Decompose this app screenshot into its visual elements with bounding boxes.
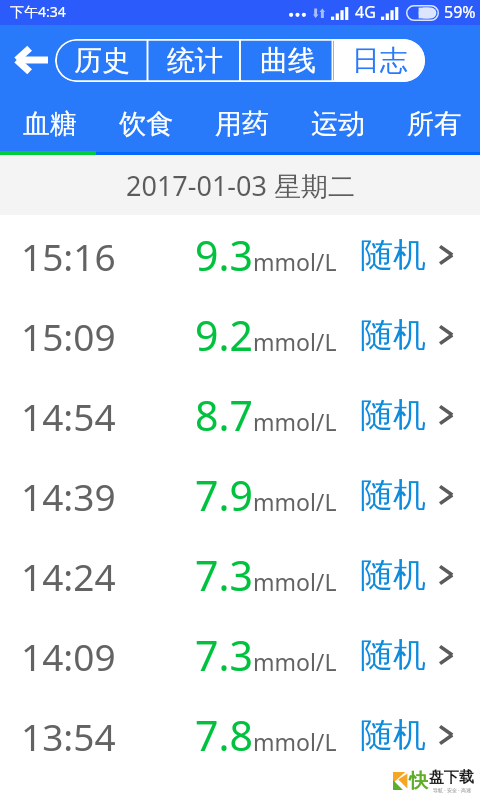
staticText: 盘下载 [429, 768, 474, 787]
button[interactable]: 统计 [148, 39, 241, 82]
staticText: 血糖 [23, 107, 77, 141]
staticText: 14:24 [21, 551, 116, 601]
staticText: 2017-01-03 星期二 [126, 167, 355, 204]
button[interactable]: 曲线 [241, 39, 334, 82]
staticText: 随机 [360, 714, 426, 756]
staticText: 13:54 [21, 711, 116, 761]
staticText: 用药 [215, 107, 269, 141]
staticText: 随机 [360, 474, 426, 516]
button[interactable]: 15:16 [0, 215, 480, 295]
staticText: 15:16 [21, 231, 116, 281]
staticText: 运动 [311, 107, 365, 141]
button[interactable]: 历史 [55, 39, 148, 82]
staticText: 随机 [360, 634, 426, 676]
staticText: 7.9 [195, 467, 253, 523]
staticText: 9.2 [195, 307, 253, 363]
staticText: 统计 [167, 43, 223, 78]
button[interactable]: 用药 [192, 95, 288, 155]
staticText: 下午4:34 [10, 2, 66, 21]
button[interactable]: 14:09 [0, 615, 480, 695]
staticText: 随机 [360, 394, 426, 436]
staticText: mmol/L [253, 246, 337, 277]
staticText: mmol/L [253, 486, 337, 517]
staticText: mmol/L [253, 566, 337, 597]
staticText: 导航 · 安全 · 高速 [433, 787, 471, 794]
staticText: 日志 [352, 43, 408, 78]
staticText: 饮食 [119, 107, 173, 141]
button[interactable]: 14:24 [0, 535, 480, 615]
staticText: 历史 [74, 43, 130, 78]
staticText: mmol/L [253, 726, 337, 757]
button[interactable]: 14:54 [0, 375, 480, 455]
staticText: 14:39 [21, 471, 116, 521]
staticText: 快 [409, 769, 428, 793]
button[interactable]: 14:39 [0, 455, 480, 535]
staticText: 7.3 [195, 547, 253, 603]
button[interactable]: 所有 [384, 95, 480, 155]
button[interactable]: 血糖 [0, 95, 96, 155]
staticText: 9.3 [195, 227, 253, 283]
button[interactable]: 运动 [288, 95, 384, 155]
staticText: 曲线 [260, 43, 316, 78]
staticText: 14:09 [21, 631, 116, 681]
button[interactable]: 饮食 [96, 95, 192, 155]
staticText: 7.3 [195, 627, 253, 683]
staticText: 8.7 [195, 387, 253, 443]
staticText: 所有 [407, 107, 461, 141]
staticText: mmol/L [253, 406, 337, 437]
staticText: 7.8 [195, 707, 253, 763]
button[interactable]: 13:54 [0, 695, 480, 775]
button[interactable]: 15:09 [0, 295, 480, 375]
staticText: 随机 [360, 554, 426, 596]
staticText: 随机 [360, 234, 426, 276]
button[interactable]: Back [4, 36, 58, 84]
staticText: 14:54 [21, 391, 116, 441]
staticText: mmol/L [253, 646, 337, 677]
staticText: mmol/L [253, 326, 337, 357]
staticText: 59% [444, 1, 476, 23]
staticText: 4G [355, 1, 376, 23]
staticText: 15:09 [21, 311, 116, 361]
button[interactable]: 日志 [334, 39, 425, 82]
staticText: 随机 [360, 314, 426, 356]
